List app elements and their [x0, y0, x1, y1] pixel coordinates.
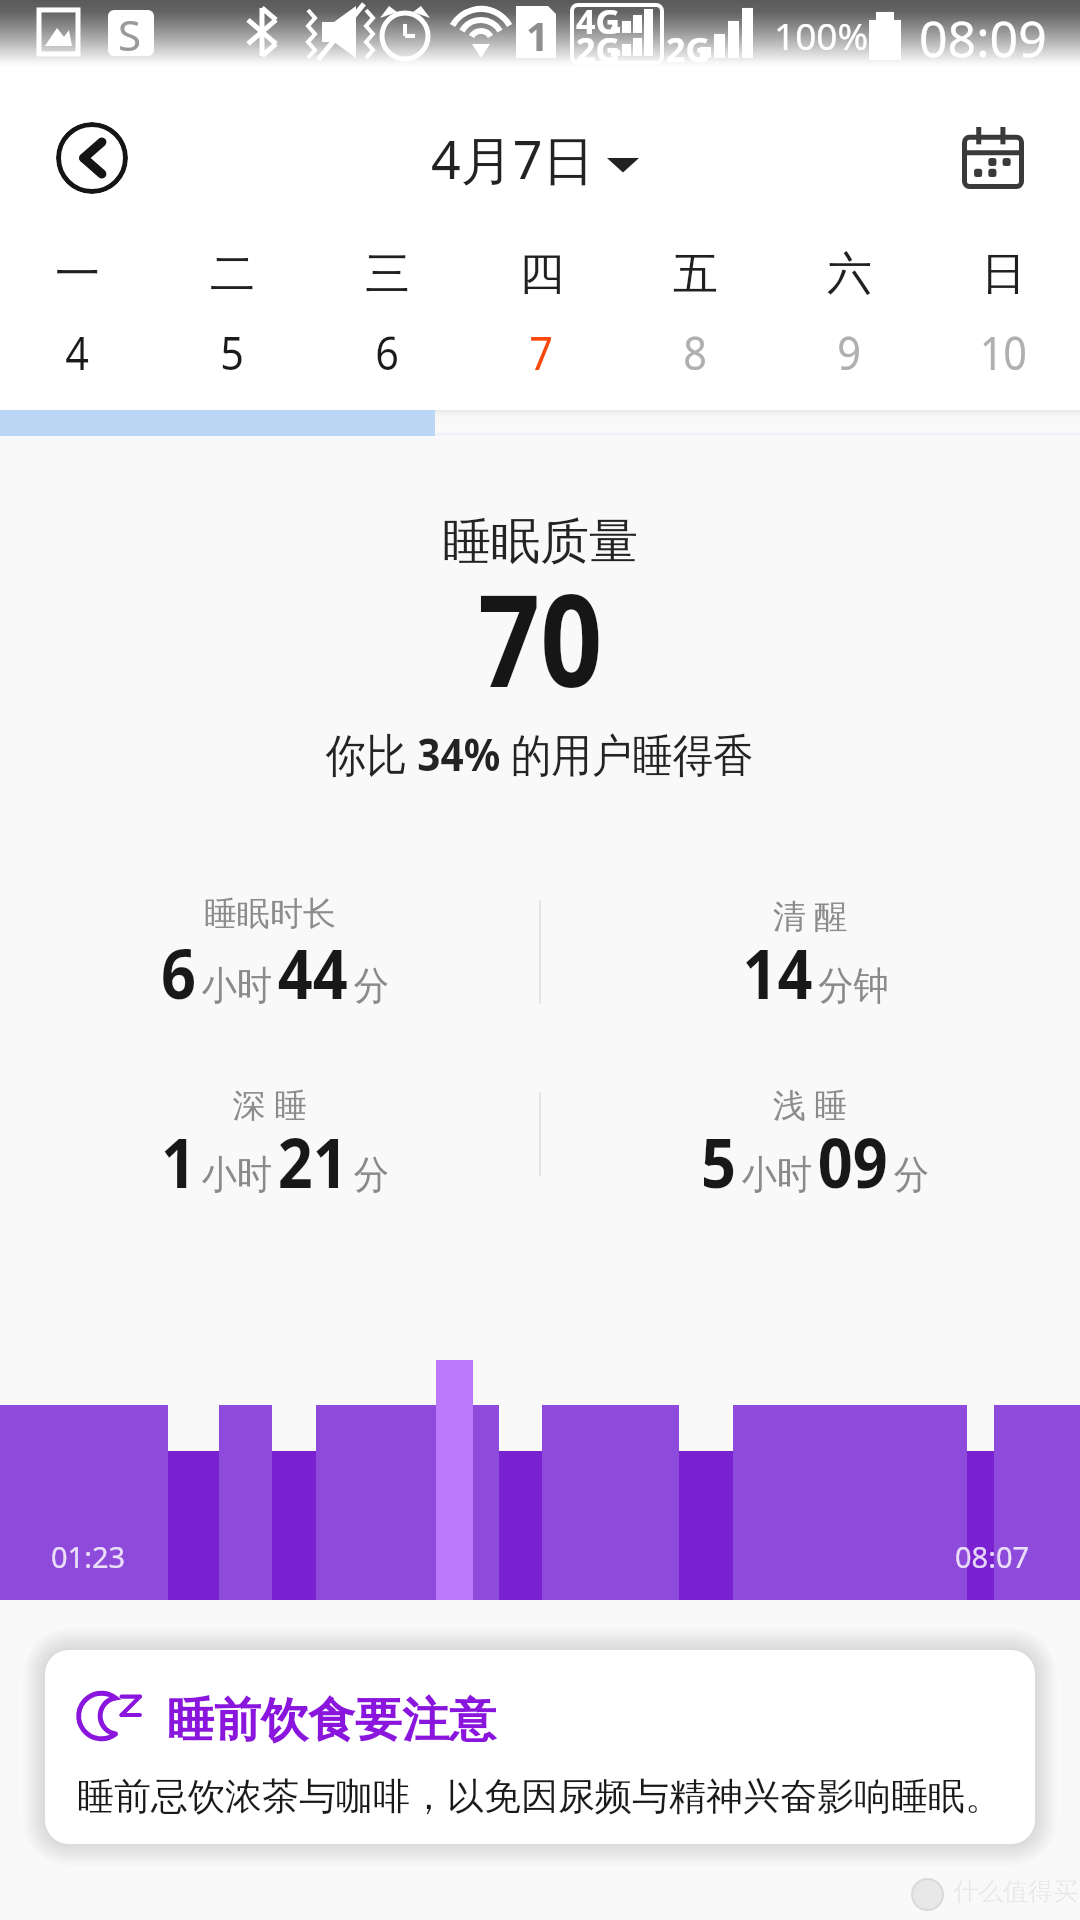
button[interactable]: 四	[464, 248, 618, 410]
staticText: 二	[210, 246, 255, 303]
staticText: 4G	[576, 0, 621, 44]
staticText: 六	[827, 246, 872, 303]
staticText: 睡眠时长	[0, 893, 540, 935]
staticText: 三	[365, 246, 410, 303]
staticText: 一	[55, 246, 100, 303]
button[interactable]: 五	[618, 248, 772, 410]
staticText: 2G	[576, 26, 621, 72]
button[interactable]: Calendar	[962, 127, 1024, 189]
staticText: 6 小时 44 分	[161, 926, 395, 1019]
button[interactable]: Sleep stages chart	[0, 1355, 1080, 1600]
staticText: S	[118, 6, 142, 63]
button[interactable]: Back	[56, 122, 128, 194]
staticText: 深 睡	[0, 1082, 540, 1127]
button[interactable]: 一	[0, 248, 155, 410]
staticText: 6	[375, 321, 400, 384]
staticText: 值	[916, 1881, 940, 1911]
button[interactable]: 4月7日	[421, 123, 649, 194]
button[interactable]: 睡前饮食要注意	[45, 1650, 1035, 1844]
staticText: 清 醒	[540, 893, 1080, 938]
staticText: 2G	[666, 26, 711, 72]
staticText: 什么值得买	[953, 1876, 1078, 1907]
staticText: 你比 34% 的用户睡得香	[326, 723, 754, 784]
staticText: 14 分钟	[742, 926, 895, 1019]
staticText: 100%	[774, 10, 869, 60]
staticText: 五	[673, 246, 718, 303]
staticText: 08:07	[955, 1537, 1030, 1576]
staticText: 1	[526, 8, 549, 62]
staticText: 5 小时 09 分	[701, 1115, 935, 1208]
staticText: 4	[65, 321, 90, 384]
staticText: 浅 睡	[540, 1082, 1080, 1127]
staticText: 08:09	[919, 4, 1047, 72]
staticText: 四	[519, 246, 564, 303]
staticText: 70	[478, 550, 603, 724]
staticText: 5	[220, 321, 245, 384]
staticText: 10	[980, 321, 1027, 384]
staticText: 8	[683, 321, 708, 384]
staticText: 4月7日	[431, 123, 595, 194]
button[interactable]: 二	[155, 248, 310, 410]
button[interactable]: 六	[772, 248, 926, 410]
staticText: 01:23	[51, 1537, 126, 1576]
staticText: 9	[837, 321, 862, 384]
staticText: 睡眠质量	[442, 511, 638, 573]
staticText: 1 小时 21 分	[161, 1115, 395, 1208]
button[interactable]: 三	[310, 248, 464, 410]
staticText: 睡前忌饮浓茶与咖啡，以免因尿频与精神兴奋影响睡眠。	[77, 1773, 1002, 1820]
staticText: 日	[981, 246, 1026, 303]
staticText: 睡前饮食要注意	[167, 1691, 496, 1750]
button[interactable]: 日	[926, 248, 1080, 410]
staticText: 7	[529, 321, 554, 384]
